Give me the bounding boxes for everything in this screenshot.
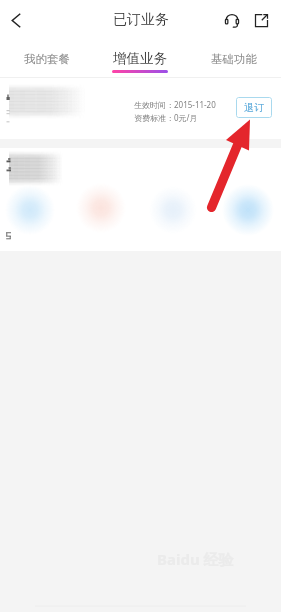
button[interactable] — [0, 148, 281, 251]
button[interactable]: Customer service — [219, 7, 245, 33]
staticText: 基础功能 — [211, 52, 257, 66]
staticText: 生效时间：2015-11-20 — [134, 99, 216, 110]
staticText: 增值业务 — [113, 50, 167, 67]
staticText: 已订业务 — [113, 11, 169, 29]
button[interactable]: Share — [248, 7, 274, 33]
button[interactable]: 生效时间：2015-11-20 — [0, 78, 281, 139]
button[interactable]: 增值业务 — [93, 39, 187, 78]
button[interactable]: Back — [0, 4, 32, 36]
staticText: 退订 — [244, 101, 264, 114]
staticText: 我的套餐 — [24, 52, 70, 66]
button[interactable]: 退订 — [236, 97, 272, 118]
staticText: Baidu 经验 — [157, 549, 234, 569]
staticText: 资费标准：0元/月 — [134, 112, 198, 123]
button[interactable]: 基础功能 — [187, 39, 281, 78]
button[interactable]: 我的套餐 — [0, 39, 93, 78]
